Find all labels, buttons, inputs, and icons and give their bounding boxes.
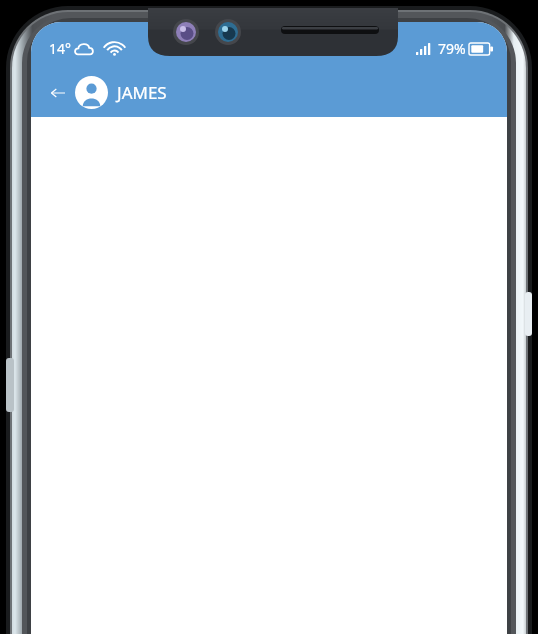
staticText: 14° bbox=[49, 39, 72, 58]
button[interactable]: Back bbox=[47, 82, 69, 104]
staticText: 79% bbox=[438, 39, 466, 58]
button[interactable]: JAMES bbox=[75, 76, 167, 109]
staticText: JAMES bbox=[117, 81, 167, 104]
